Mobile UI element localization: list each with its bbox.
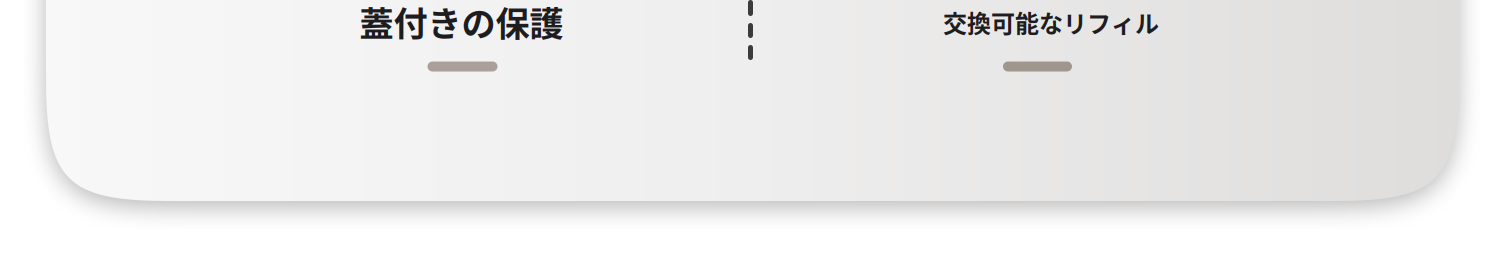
staticText: 交換可能なリフィル bbox=[943, 5, 1159, 39]
staticText: 蓋付きの保護 bbox=[359, 0, 563, 46]
button[interactable]: 交換可能なリフィル bbox=[881, 0, 1221, 146]
button[interactable]: 蓋付きの保護 bbox=[291, 0, 631, 146]
